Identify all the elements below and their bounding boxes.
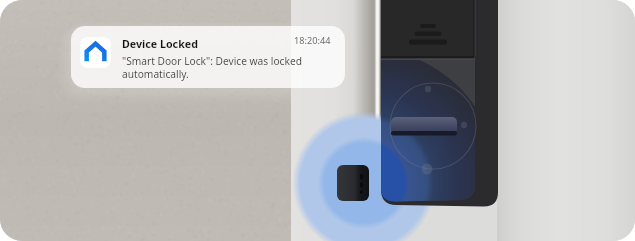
staticText: "Smart Door Lock": Device was locked aut… <box>122 54 331 81</box>
button[interactable]: Device Locked <box>71 26 345 88</box>
staticText: Device Locked <box>122 37 198 52</box>
staticText: 18:20:44 <box>294 34 331 47</box>
